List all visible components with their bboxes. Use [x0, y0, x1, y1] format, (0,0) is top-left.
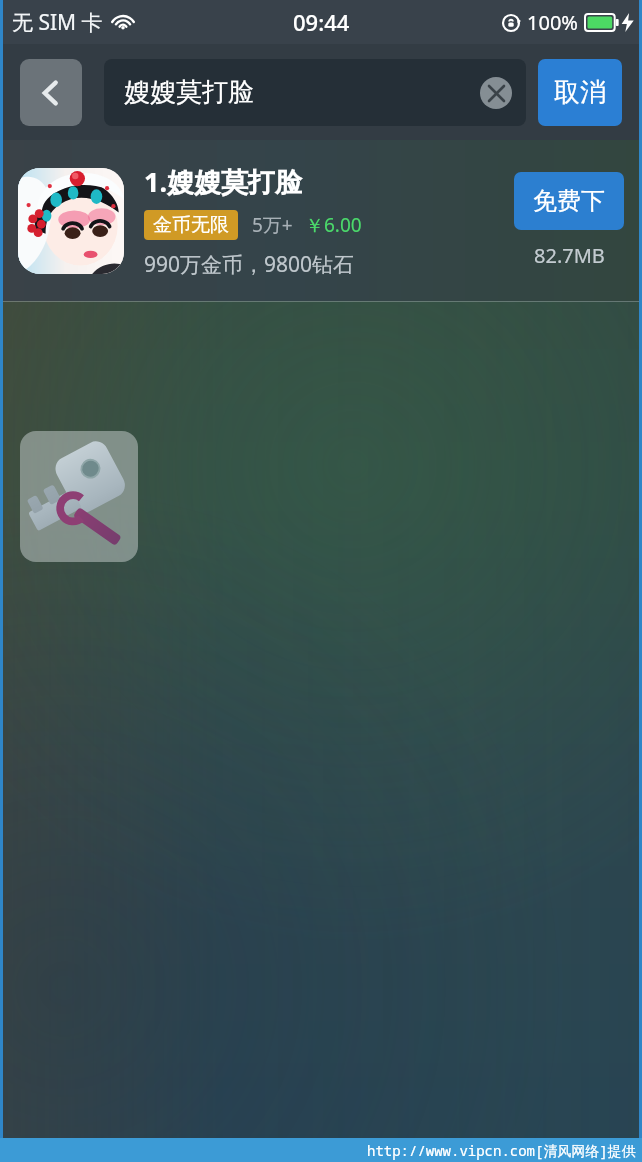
button[interactable]: 1.嫂嫂莫打脸 [0, 140, 642, 301]
staticText: 免费下 [533, 186, 605, 216]
button[interactable]: 清除 [480, 77, 512, 109]
staticText: http://www.vipcn.com[清风网络]提供 [367, 1141, 636, 1160]
staticText: 嫂嫂莫打脸 [124, 76, 254, 109]
button[interactable]: 嫂嫂莫打脸 [104, 59, 526, 126]
staticText: 82.7MB [534, 242, 605, 269]
staticText: 09:44 [293, 7, 350, 37]
staticText: 取消 [554, 76, 606, 109]
staticText: 无 SIM 卡 [12, 8, 103, 37]
button[interactable]: 取消 [538, 59, 622, 126]
staticText: 990万金币，9800钻石 [144, 250, 355, 279]
staticText: 金币无限 [153, 213, 229, 237]
staticText: 1.嫂嫂莫打脸 [144, 163, 303, 200]
button[interactable]: 返回 [20, 59, 82, 126]
staticText: ￥6.00 [305, 212, 362, 238]
button[interactable]: 免费下 [514, 172, 624, 230]
button[interactable]: 密钥工具 [20, 431, 138, 562]
staticText: 100% [527, 9, 578, 36]
staticText: 5万+ [252, 212, 293, 238]
